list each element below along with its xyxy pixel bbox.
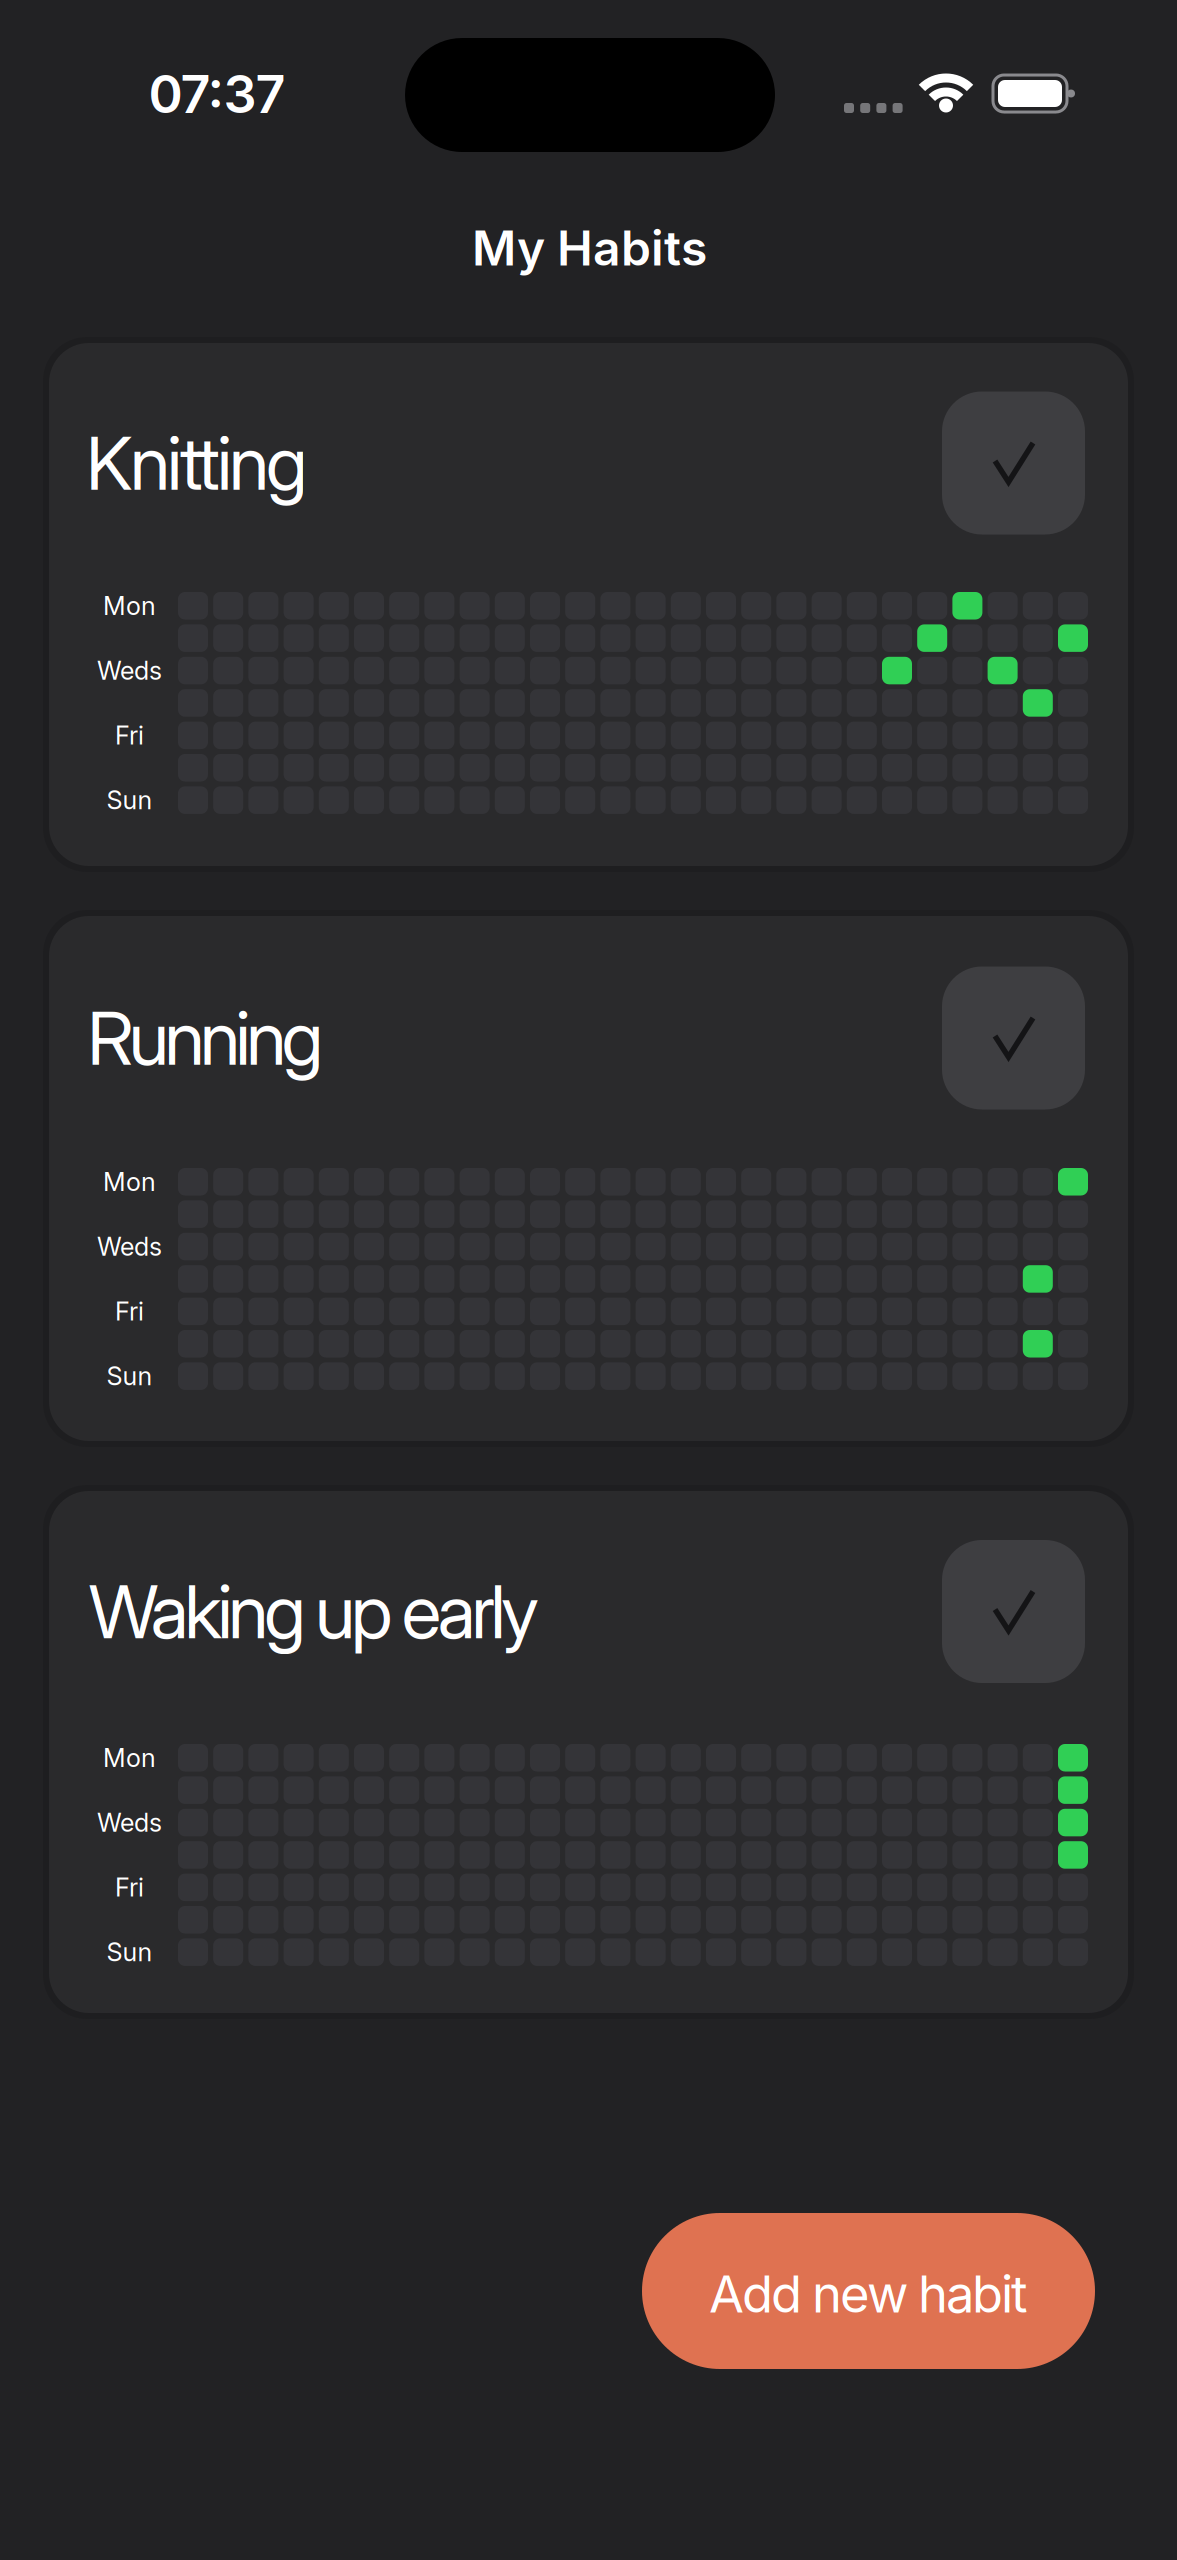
staticText: Fri	[115, 1296, 144, 1327]
staticText: Weds	[97, 655, 162, 686]
button[interactable]	[942, 391, 1085, 534]
staticText: Weds	[97, 1807, 162, 1838]
staticText: Fri	[115, 1872, 144, 1903]
staticText: 07:37	[148, 62, 285, 125]
staticText: My Habits	[472, 219, 707, 277]
staticText: Weds	[97, 1231, 162, 1262]
staticText: Running	[87, 994, 323, 1082]
staticText: Add new habit	[709, 2263, 1028, 2325]
button[interactable]	[942, 1540, 1085, 1683]
staticText: Mon	[103, 590, 156, 621]
staticText: Fri	[115, 720, 144, 751]
staticText: Knitting	[86, 419, 307, 507]
staticText: Waking up early	[89, 1567, 539, 1656]
staticText: Sun	[106, 1361, 152, 1391]
staticText: Sun	[106, 1937, 152, 1967]
staticText: Sun	[106, 785, 152, 815]
button[interactable]: Add new habit	[642, 2213, 1095, 2369]
staticText: Mon	[103, 1166, 156, 1197]
staticText: Mon	[103, 1742, 156, 1773]
button[interactable]	[942, 966, 1085, 1109]
